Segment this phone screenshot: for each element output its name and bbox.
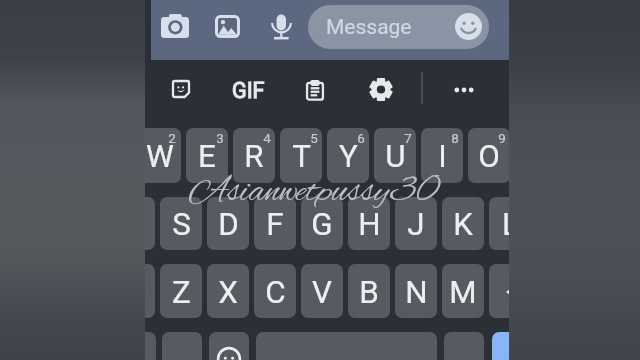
staticText: N: [405, 274, 428, 311]
button[interactable]: V: [301, 264, 343, 318]
staticText: 5: [310, 131, 318, 147]
button[interactable]: A: [145, 197, 155, 250]
staticText: Message: [326, 15, 412, 40]
button[interactable]: [209, 332, 249, 360]
button[interactable]: D: [207, 197, 249, 250]
button[interactable]: X: [207, 264, 249, 318]
staticText: B: [359, 274, 379, 311]
button[interactable]: L: [489, 197, 509, 250]
button[interactable]: H: [348, 197, 390, 250]
staticText: 7: [404, 131, 412, 147]
staticText: U: [385, 138, 406, 175]
button[interactable]: Camera: [161, 14, 189, 38]
staticText: Z: [172, 274, 191, 311]
staticText: K: [453, 206, 473, 243]
button[interactable]: B: [348, 264, 390, 318]
button[interactable]: Stickers: [171, 79, 191, 100]
button[interactable]: GIF: [231, 76, 265, 104]
button[interactable]: J: [395, 197, 437, 250]
button[interactable]: W: [145, 128, 181, 183]
button[interactable]: F: [254, 197, 296, 250]
staticText: D: [218, 206, 239, 243]
staticText: W: [146, 138, 174, 175]
staticText: 3: [216, 131, 224, 147]
button[interactable]: Voice message: [271, 14, 292, 40]
staticText: 2: [168, 131, 176, 147]
staticText: Asianwetpussy30: [189, 169, 438, 216]
staticText: H: [358, 206, 381, 243]
staticText: X: [218, 274, 238, 311]
staticText: 8: [451, 131, 459, 147]
button[interactable]: [492, 332, 509, 360]
staticText: C: [265, 274, 286, 311]
staticText: G: [311, 206, 333, 243]
button[interactable]: T: [280, 128, 322, 183]
button[interactable]: More options: [451, 80, 477, 100]
button[interactable]: G: [301, 197, 343, 250]
button[interactable]: R: [233, 128, 275, 183]
button[interactable]: [145, 332, 156, 360]
staticText: O: [478, 138, 500, 175]
button[interactable]: [489, 264, 509, 318]
button[interactable]: U: [374, 128, 416, 183]
button[interactable]: K: [442, 197, 484, 250]
staticText: L: [502, 206, 509, 243]
staticText: 9: [498, 131, 506, 147]
button[interactable]: .: [444, 332, 484, 360]
staticText: M: [449, 274, 477, 311]
button[interactable]: Y: [327, 128, 369, 183]
staticText: Y: [339, 138, 358, 175]
button[interactable]: S: [160, 197, 202, 250]
button[interactable]: Settings: [369, 78, 393, 101]
button[interactable]: [145, 264, 155, 318]
staticText: R: [244, 138, 264, 175]
button[interactable]: N: [395, 264, 437, 318]
staticText: S: [172, 206, 191, 243]
button[interactable]: I: [421, 128, 463, 183]
button[interactable]: Message: [308, 5, 489, 49]
staticText: I: [438, 138, 447, 175]
staticText: T: [292, 138, 311, 175]
button[interactable]: Gallery: [215, 15, 240, 38]
button[interactable]: O: [468, 128, 509, 183]
button[interactable]: M: [442, 264, 484, 318]
button[interactable]: Clipboard: [304, 79, 326, 103]
staticText: GIF: [232, 78, 265, 103]
button[interactable]: C: [254, 264, 296, 318]
button[interactable]: E: [186, 128, 228, 183]
staticText: 4: [263, 131, 271, 147]
staticText: 6: [357, 131, 365, 147]
staticText: F: [266, 206, 284, 243]
staticText: V: [312, 274, 332, 311]
staticText: J: [407, 206, 425, 243]
staticText: E: [198, 138, 216, 175]
button[interactable]: Z: [160, 264, 202, 318]
button[interactable]: ,: [162, 332, 202, 360]
